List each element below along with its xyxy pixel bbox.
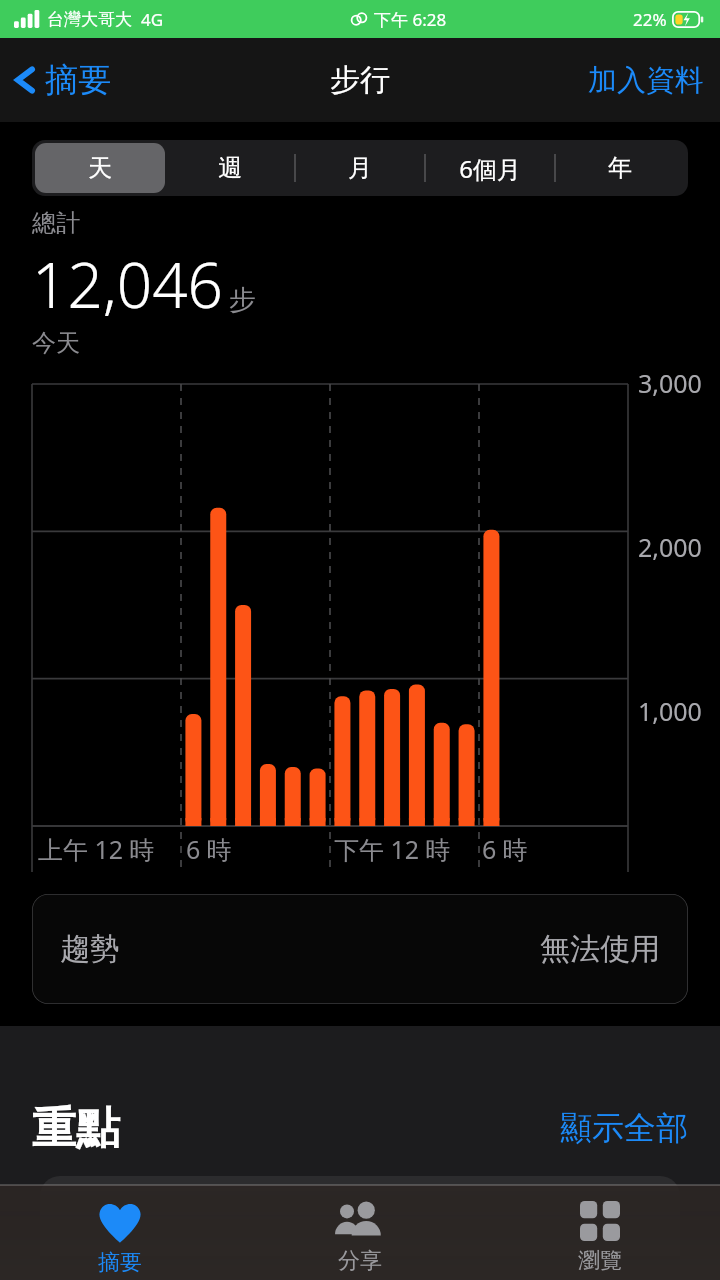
staticText: 上午 12 時 <box>38 832 155 866</box>
staticText: 無法使用 <box>540 930 660 968</box>
staticText: 1,000 <box>638 694 702 728</box>
staticText: 22% <box>633 8 667 31</box>
button[interactable]: 摘要 <box>0 51 123 109</box>
staticText: 下午 6:28 <box>374 8 447 31</box>
staticText: 4G <box>141 8 164 31</box>
staticText: 步 <box>229 283 256 317</box>
staticText: 6 時 <box>186 832 232 866</box>
staticText: 步行 <box>330 61 390 99</box>
staticText: 3,000 <box>638 366 702 400</box>
button[interactable]: 6個月 <box>425 143 555 193</box>
button[interactable]: 瀏覽 <box>480 1185 720 1280</box>
staticText: 重點 <box>32 1101 120 1156</box>
button[interactable]: 趨勢 <box>32 894 688 1004</box>
staticText: 12,046 <box>32 242 223 326</box>
button[interactable]: 分享 <box>240 1185 480 1280</box>
button[interactable]: 摘要 <box>0 1185 240 1280</box>
staticText: 月 <box>348 153 372 183</box>
button[interactable]: 週 <box>165 143 295 193</box>
staticText: 下午 12 時 <box>334 832 451 866</box>
staticText: 6 時 <box>482 832 528 866</box>
staticText: 天 <box>88 153 112 183</box>
staticText: 摘要 <box>98 1249 142 1277</box>
staticText: 週 <box>218 153 242 183</box>
button[interactable]: 顯示全部 <box>552 1100 696 1156</box>
button[interactable]: 天 <box>35 143 165 193</box>
button[interactable]: 月 <box>295 143 425 193</box>
staticText: 加入資料 <box>588 62 704 99</box>
staticText: 摘要 <box>45 59 111 101</box>
button[interactable] <box>40 1176 680 1280</box>
button[interactable]: 加入資料 <box>572 54 720 107</box>
staticText: 瀏覽 <box>578 1247 622 1275</box>
staticText: 台灣大哥大 <box>47 9 132 30</box>
staticText: 總計 <box>32 208 80 238</box>
staticText: 2,000 <box>638 530 702 564</box>
button[interactable]: 年 <box>555 143 685 193</box>
staticText: 趨勢 <box>60 930 120 968</box>
staticText: 今天 <box>32 328 80 358</box>
staticText: 年 <box>608 153 632 183</box>
staticText: 6個月 <box>459 152 521 185</box>
staticText: 顯示全部 <box>560 1108 688 1148</box>
staticText: 分享 <box>338 1247 382 1275</box>
